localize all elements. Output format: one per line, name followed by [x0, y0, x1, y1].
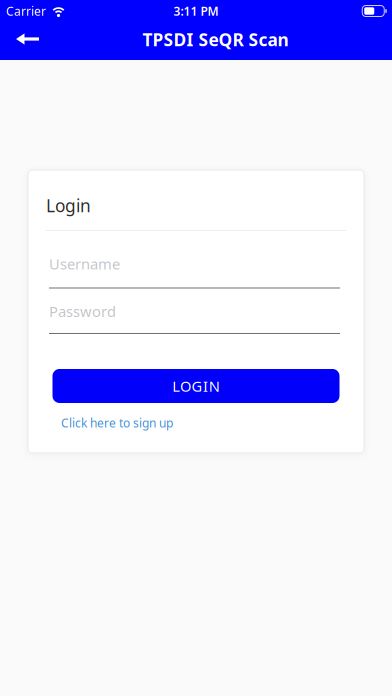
staticText: 3:11 PM — [173, 3, 218, 19]
staticText: Password — [49, 301, 116, 321]
button[interactable]: Click here to sign up — [61, 415, 173, 431]
button[interactable]: Password — [49, 301, 340, 334]
staticText: TPSDI SeQR Scan — [142, 28, 288, 51]
staticText: Carrier — [6, 3, 46, 19]
button[interactable]: Username — [49, 254, 340, 288]
button[interactable]: LOGIN — [52, 369, 339, 403]
staticText: LOGIN — [172, 376, 220, 396]
staticText: Click here to sign up — [61, 415, 173, 431]
staticText: Login — [46, 194, 91, 217]
button[interactable]: Back — [0, 22, 39, 60]
staticText: Username — [49, 254, 120, 273]
